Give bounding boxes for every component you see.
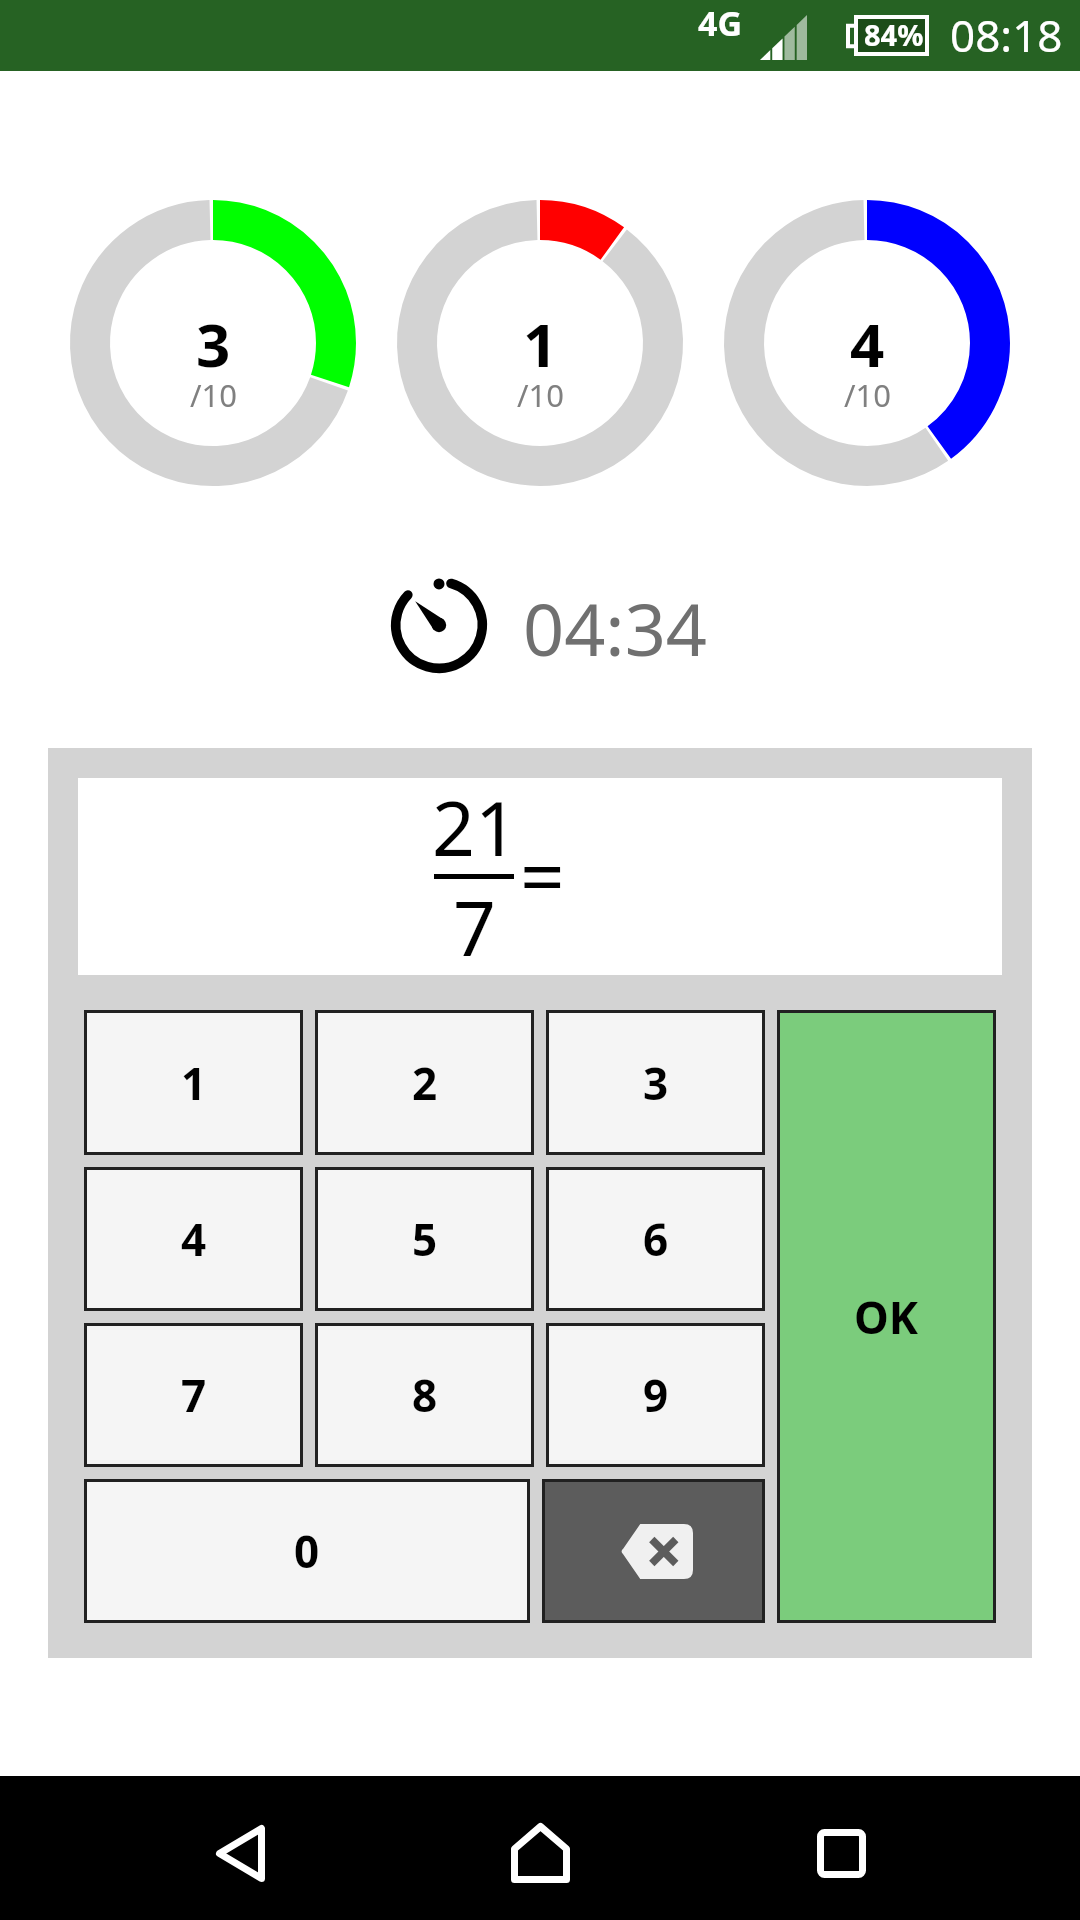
staticText: 9 bbox=[643, 1365, 669, 1425]
staticText: 8 bbox=[412, 1365, 438, 1425]
staticText: 08:18 bbox=[950, 5, 1063, 65]
staticText: = bbox=[520, 822, 565, 928]
button[interactable]: 6 bbox=[546, 1167, 765, 1311]
button[interactable]: 9 bbox=[546, 1323, 765, 1467]
staticText: /10 bbox=[190, 374, 237, 416]
staticText: 3 bbox=[643, 1053, 669, 1113]
button[interactable]: 2 bbox=[315, 1010, 534, 1155]
button[interactable]: Home bbox=[475, 1788, 605, 1918]
staticText: 4G bbox=[698, 0, 743, 46]
button[interactable]: 4 bbox=[84, 1167, 303, 1311]
staticText: 04:34 bbox=[523, 579, 708, 677]
staticText: 2 bbox=[412, 1053, 438, 1113]
staticText: /10 bbox=[517, 374, 564, 416]
staticText: 4 bbox=[850, 303, 885, 385]
button[interactable]: 8 bbox=[315, 1323, 534, 1467]
staticText: 1 bbox=[181, 1053, 207, 1113]
button[interactable]: Recents bbox=[776, 1788, 906, 1918]
button[interactable]: Backspace bbox=[542, 1479, 765, 1623]
staticText: 7 bbox=[453, 876, 496, 978]
staticText: 3 bbox=[196, 303, 231, 385]
staticText: 5 bbox=[412, 1209, 438, 1269]
button[interactable]: 5 bbox=[315, 1167, 534, 1311]
button[interactable]: 1 bbox=[84, 1010, 303, 1155]
button[interactable]: 3 bbox=[546, 1010, 765, 1155]
staticText: 1 bbox=[523, 303, 558, 385]
staticText: 21 bbox=[432, 776, 518, 878]
staticText: /10 bbox=[844, 374, 891, 416]
button[interactable]: OK bbox=[777, 1010, 996, 1623]
staticText: 7 bbox=[181, 1365, 207, 1425]
button[interactable]: 0 bbox=[84, 1479, 530, 1623]
staticText: 0 bbox=[294, 1521, 320, 1581]
staticText: 4 bbox=[181, 1209, 207, 1269]
staticText: 6 bbox=[643, 1209, 669, 1269]
button[interactable]: 7 bbox=[84, 1323, 303, 1467]
staticText: 84% bbox=[864, 15, 924, 54]
button[interactable]: Back bbox=[175, 1788, 305, 1918]
staticText: OK bbox=[854, 1287, 919, 1347]
